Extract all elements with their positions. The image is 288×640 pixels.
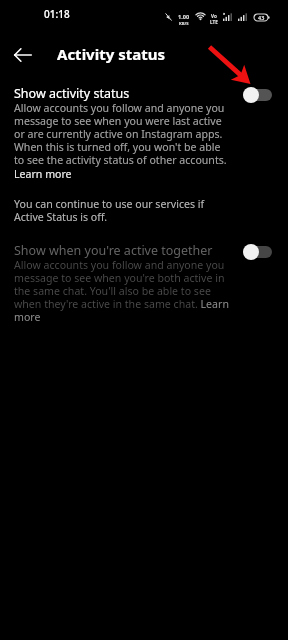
staticText: Learn more <box>14 168 72 181</box>
staticText: You can continue to use our services if … <box>14 198 219 224</box>
staticText: 1.00 <box>178 13 190 21</box>
button[interactable]: Show activity status toggle, off <box>243 87 272 103</box>
staticText: Show activity status <box>14 85 130 102</box>
staticText: 43 <box>258 14 265 21</box>
staticText: KB/S <box>179 21 189 27</box>
staticText: Allow accounts you follow and anyone you… <box>14 259 229 324</box>
staticText: Show when you're active together <box>14 242 213 259</box>
staticText: Vo <box>211 13 217 19</box>
button[interactable]: Show when you're active together toggle,… <box>243 244 272 260</box>
staticText: Allow accounts you follow and anyone you… <box>14 102 229 167</box>
staticText: 01:18 <box>44 7 70 21</box>
staticText: LTE <box>210 19 218 25</box>
staticText: Activity status <box>57 44 165 64</box>
button[interactable]: Back <box>2 34 44 76</box>
